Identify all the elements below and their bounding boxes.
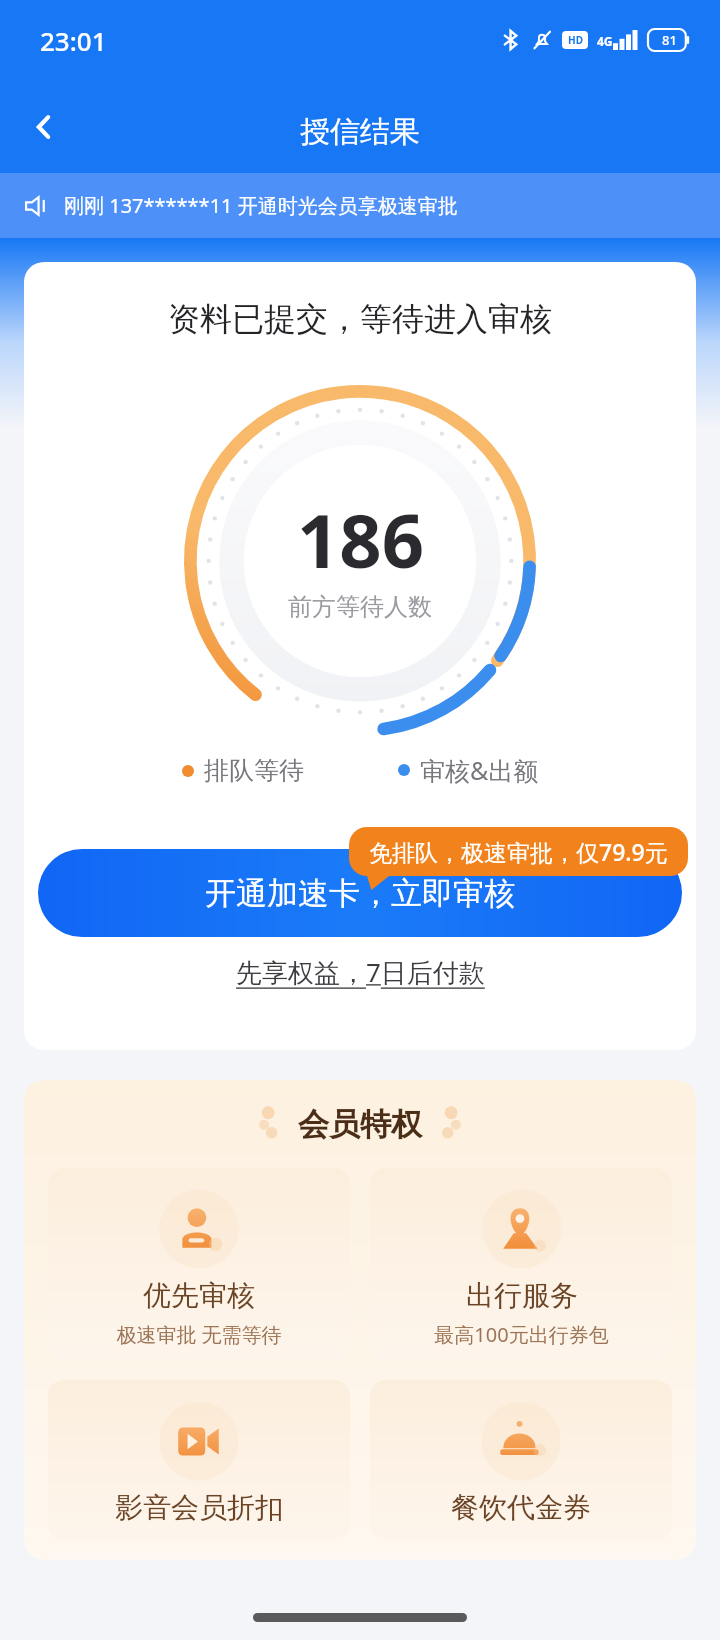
staticText: 影音会员折扣 — [115, 1490, 283, 1525]
button[interactable]: 影音会员折扣 — [48, 1380, 350, 1540]
staticText: 23:01 — [40, 23, 107, 58]
staticText: 出行服务 — [466, 1278, 578, 1313]
button[interactable]: 开通加速卡，立即审核 — [38, 849, 682, 937]
staticText: 餐饮代金券 — [451, 1490, 591, 1525]
button[interactable]: 餐饮代金券 — [370, 1380, 672, 1540]
staticText: 资料已提交，等待进入审核 — [168, 299, 552, 339]
staticText: 4G — [597, 33, 613, 49]
staticText: 前方等待人数 — [288, 592, 432, 622]
staticText: 审核&出额 — [420, 753, 539, 787]
staticText: 优先审核 — [143, 1278, 255, 1313]
staticText: 会员特权 — [298, 1105, 422, 1144]
staticText: 开通加速卡，立即审核 — [205, 874, 515, 913]
staticText: 极速审批 无需等待 — [116, 1321, 282, 1348]
button[interactable]: 出行服务 — [370, 1168, 672, 1360]
staticText: 刚刚 137******11 开通时光会员享极速审批 — [64, 192, 458, 219]
staticText: HD — [568, 33, 583, 47]
staticText: 免排队，极速审批，仅79.9元 — [369, 836, 668, 867]
button[interactable]: 优先审核 — [48, 1168, 350, 1360]
staticText: 授信结果 — [300, 113, 420, 151]
staticText: 最高100元出行券包 — [434, 1321, 609, 1348]
button[interactable]: Back — [16, 99, 72, 155]
staticText: 186 — [297, 489, 424, 590]
button[interactable]: 先享权益，7日后付款 — [236, 954, 485, 990]
staticText: 81 — [662, 31, 677, 49]
staticText: 排队等待 — [204, 755, 304, 786]
button[interactable]: Announcement — [0, 173, 720, 238]
other: Announcement — [24, 193, 50, 219]
